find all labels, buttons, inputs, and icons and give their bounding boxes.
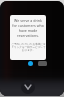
- button[interactable]: Info: [28, 61, 33, 66]
- staticText: ご予約いただいたお客様には ドリンクを一杯サービスして おります。: [11, 42, 46, 51]
- button[interactable]: Home: [21, 80, 35, 94]
- staticText: We serve a drink for customers who have …: [12, 18, 44, 38]
- button[interactable]: [38, 61, 47, 66]
